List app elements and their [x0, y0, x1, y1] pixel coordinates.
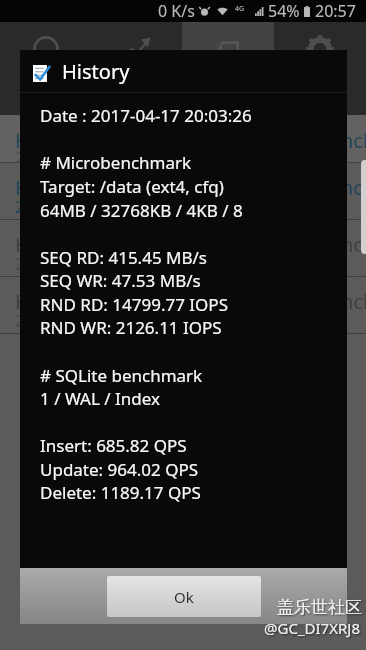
staticText: Results — [115, 83, 159, 101]
staticText: 2017-04-17 20:03:26 — [15, 147, 167, 169]
staticText: Androbench — [260, 231, 366, 258]
staticText: RND WR: 2126.11 IOPS — [40, 316, 222, 339]
staticText: 2017-04-17 20:03:26 — [15, 310, 167, 332]
staticText: History — [15, 288, 83, 315]
staticText: SEQ WR: 47.53 MB/s — [40, 269, 201, 292]
staticText: Target: /data (ext4, cfq) — [40, 175, 224, 198]
staticText: History — [15, 127, 83, 154]
button[interactable]: History — [0, 220, 366, 277]
staticText: Androbench — [260, 288, 366, 315]
button[interactable]: History — [182, 22, 274, 115]
staticText: History — [62, 58, 130, 85]
staticText: History — [15, 174, 83, 201]
staticText: 0 K/s — [158, 0, 195, 22]
staticText: # Microbenchmark — [40, 151, 192, 174]
button[interactable]: History — [0, 115, 366, 163]
staticText: History — [206, 83, 250, 101]
staticText: @GC_DI7XRJ8 — [264, 618, 360, 638]
staticText: SEQ RD: 415.45 MB/s — [40, 246, 207, 269]
staticText: 20:57 — [315, 0, 356, 22]
staticText: Measure — [19, 83, 73, 101]
staticText: RND RD: 14799.77 IOPS — [40, 293, 228, 316]
staticText: Androbench — [260, 174, 366, 201]
staticText: 2017-04-17 20:03:26 — [15, 196, 167, 218]
staticText: Update: 964.02 QPS — [40, 458, 199, 481]
staticText: 2017-04-17 20:03:26 — [15, 253, 167, 275]
button[interactable]: History — [0, 163, 366, 220]
button[interactable]: Measure — [0, 22, 91, 115]
staticText: Date : 2017-04-17 20:03:26 — [40, 104, 252, 127]
staticText: Insert: 685.82 QPS — [40, 434, 187, 457]
staticText: # SQLite benchmark — [40, 364, 203, 387]
staticText: 4G — [235, 4, 245, 14]
button[interactable]: Results — [91, 22, 182, 115]
staticText: 54% — [268, 0, 300, 22]
staticText: 1 / WAL / Index — [40, 387, 160, 410]
staticText: 盖乐世社区 — [277, 597, 362, 618]
button[interactable]: Ok — [107, 576, 261, 617]
staticText: Ok — [174, 587, 194, 607]
staticText: Androbench — [260, 127, 366, 154]
staticText: 64MB / 32768KB / 4KB / 8 — [40, 199, 243, 222]
staticText: History — [15, 231, 83, 258]
button[interactable]: Setting — [274, 22, 366, 115]
staticText: Setting — [298, 83, 342, 101]
button[interactable]: History — [0, 277, 366, 334]
staticText: Delete: 1189.17 QPS — [40, 481, 201, 504]
